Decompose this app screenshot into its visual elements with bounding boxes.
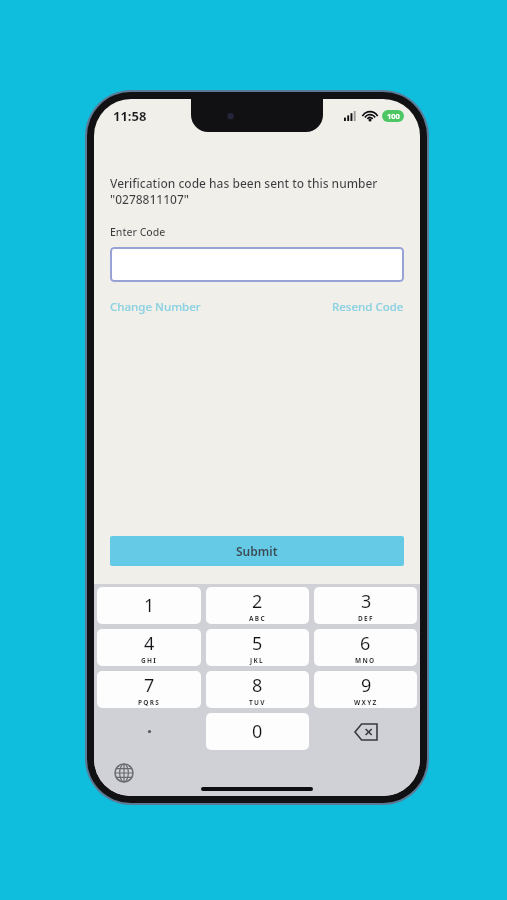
staticText: PQRS (138, 698, 161, 707)
button[interactable] (97, 713, 201, 750)
staticText: WXYZ (354, 698, 378, 707)
button[interactable]: Resend Code (332, 299, 404, 315)
button[interactable]: Backspace (314, 713, 417, 750)
staticText: 8 (252, 673, 263, 698)
button[interactable]: 8 (206, 671, 309, 708)
staticText: 100 (387, 111, 400, 121)
button[interactable]: 3 (314, 587, 417, 624)
button[interactable]: 6 (314, 629, 417, 666)
staticText: 0 (252, 719, 263, 744)
staticText: Resend Code (332, 299, 404, 315)
staticText: JKL (250, 656, 265, 665)
staticText: Verification code has been sent to this … (110, 175, 378, 207)
staticText: Change Number (110, 299, 201, 315)
staticText: GHI (141, 656, 158, 665)
button[interactable]: 9 (314, 671, 417, 708)
button[interactable]: Submit (110, 536, 404, 566)
button[interactable] (110, 247, 404, 282)
staticText: 6 (360, 631, 371, 656)
staticText: 5 (252, 631, 263, 656)
button[interactable]: Change keyboard language (112, 761, 136, 785)
staticText: 1 (144, 593, 155, 618)
staticText: MNO (355, 656, 376, 665)
staticText: 3 (361, 589, 372, 614)
button[interactable]: 2 (206, 587, 309, 624)
staticText: 2 (252, 589, 263, 614)
button[interactable]: 1 (97, 587, 201, 624)
staticText: 11:58 (113, 107, 147, 125)
staticText: Enter Code (110, 225, 166, 239)
button[interactable]: 7 (97, 671, 201, 708)
staticText: 9 (361, 673, 372, 698)
staticText: ABC (249, 614, 266, 623)
button[interactable]: 0 (206, 713, 309, 750)
button[interactable]: 5 (206, 629, 309, 666)
staticText: 7 (144, 673, 155, 698)
staticText: TUV (249, 698, 266, 707)
staticText: Submit (236, 543, 278, 559)
button[interactable]: 4 (97, 629, 201, 666)
staticText: 4 (144, 631, 155, 656)
staticText: DEF (358, 614, 374, 623)
button[interactable]: Change Number (110, 299, 201, 315)
